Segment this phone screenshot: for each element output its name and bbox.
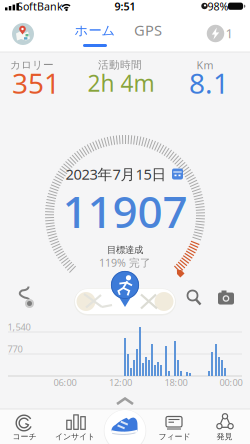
button[interactable]: 連続記録: [206, 23, 236, 43]
button[interactable]: 歩数: [102, 407, 148, 444]
button[interactable]: ルート: [12, 281, 38, 311]
staticText: 2023年7月15日: [65, 164, 166, 184]
staticText: 目標達成: [107, 244, 143, 256]
button[interactable]: 日付を選択: [58, 165, 186, 183]
staticText: 18:00: [164, 376, 187, 389]
staticText: カロリー: [10, 58, 54, 71]
staticText: フィード: [158, 432, 190, 441]
button[interactable]: GPS: [128, 17, 168, 43]
staticText: ホーム: [74, 22, 115, 39]
button[interactable]: 発見: [200, 409, 248, 444]
staticText: 119% 完了: [99, 255, 151, 270]
staticText: 00:00: [219, 376, 242, 389]
staticText: 2h 4m: [87, 68, 154, 98]
button[interactable]: ホーム: [71, 17, 119, 43]
button[interactable]: 検索: [184, 288, 202, 306]
staticText: 活動時間: [98, 58, 142, 71]
staticText: Km: [196, 58, 213, 72]
staticText: 98%: [207, 0, 228, 13]
staticText: 1,540: [7, 321, 30, 333]
button[interactable]: パネルを開く: [114, 396, 136, 406]
staticText: 発見: [216, 432, 232, 441]
staticText: コーチ: [12, 432, 36, 441]
button[interactable]: プロフィール: [11, 22, 35, 46]
button[interactable]: コーチ: [0, 409, 48, 444]
staticText: 8.1: [189, 64, 229, 102]
staticText: 1: [225, 24, 233, 42]
staticText: 351: [12, 64, 60, 102]
staticText: 12:00: [109, 376, 132, 389]
staticText: SoftBank: [17, 0, 63, 13]
button[interactable]: アクティビティ: [110, 270, 140, 310]
button[interactable]: カメラ: [217, 289, 235, 305]
staticText: 06:00: [53, 376, 76, 389]
staticText: インサイト: [55, 432, 95, 441]
staticText: GPS: [134, 20, 162, 40]
staticText: 9:51: [114, 0, 135, 13]
staticText: 770: [7, 343, 22, 355]
staticText: 11907: [62, 182, 187, 240]
button[interactable]: インサイト: [51, 409, 99, 444]
button[interactable]: フィード: [150, 409, 198, 444]
